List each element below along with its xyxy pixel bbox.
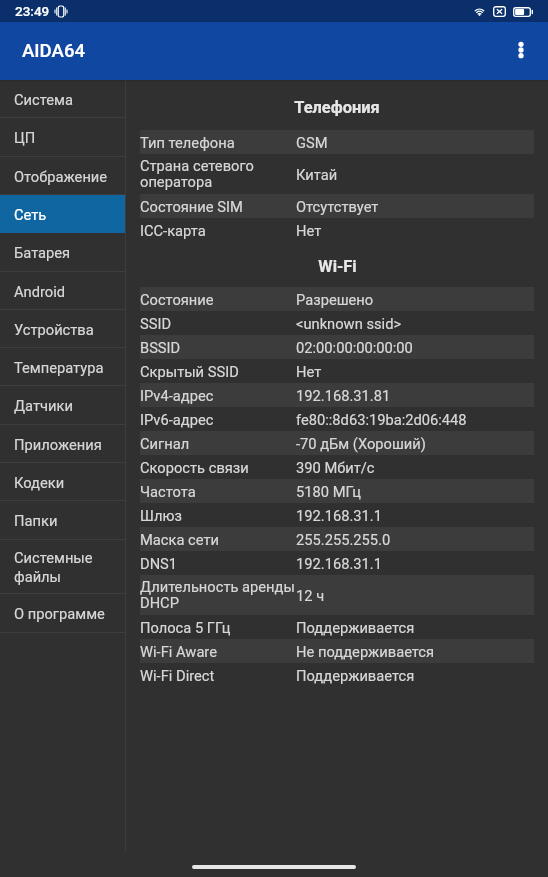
button[interactable]: Частота [140,479,534,503]
staticText: -70 дБм (Хороший) [296,435,426,452]
staticText: Скорость связи [140,459,296,476]
staticText: Длительность аренды DHCP [140,578,296,612]
staticText: DNS1 [140,555,296,572]
button[interactable]: Отображение [0,157,125,195]
button[interactable]: Система [0,80,125,118]
staticText: 02:00:00:00:00:00 [296,339,413,356]
staticText: ЦП [14,129,36,146]
staticText: Маска сети [140,531,296,548]
button[interactable]: SSID [140,311,534,335]
button[interactable]: Wi-Fi Aware [140,639,534,663]
staticText: <unknown ssid> [296,315,402,332]
staticText: Скрытый SSID [140,363,296,380]
staticText: Поддерживается [296,667,415,684]
staticText: Устройства [14,321,94,338]
button[interactable]: Приложения [0,425,125,463]
staticText: Батарея [14,244,71,261]
button[interactable]: Шлюз [140,503,534,527]
staticText: AIDA64 [22,40,86,62]
staticText: BSSID [140,339,296,356]
button[interactable]: ЦП [0,118,125,157]
button[interactable]: More options [493,22,548,80]
staticText: Отображение [14,168,108,185]
button[interactable]: Папки [0,501,125,540]
button[interactable]: ICC-карта [140,218,534,242]
button[interactable]: Маска сети [140,527,534,551]
staticText: Нет [296,363,322,380]
staticText: Нет [296,222,322,239]
button[interactable]: Скрытый SSID [140,359,534,383]
button[interactable]: Состояние SIM [140,194,534,218]
staticText: Кодеки [14,474,65,491]
staticText: Не поддерживается [296,643,435,660]
staticText: Страна сетевого оператора [140,157,296,191]
staticText: SSID [140,315,296,332]
staticText: 255.255.255.0 [296,531,391,548]
staticText: Шлюз [140,507,296,524]
staticText: IPv6-адрес [140,411,296,428]
staticText: Датчики [14,397,73,414]
button[interactable]: Состояние [140,287,534,311]
staticText: Разрешено [296,291,374,308]
button[interactable]: IPv6-адрес [140,407,534,431]
staticText: 12 ч [296,587,325,604]
staticText: Частота [140,483,296,500]
staticText: Поддерживается [296,619,415,636]
button[interactable]: Устройства [0,310,125,348]
button[interactable]: Датчики [0,386,125,425]
button[interactable]: Wi-Fi Direct [140,663,534,687]
staticText: Телефония [294,98,380,117]
button[interactable]: DNS1 [140,551,534,575]
button[interactable]: Сеть [0,195,125,233]
button[interactable]: Температура [0,348,125,386]
button[interactable]: Сигнал [140,431,534,455]
staticText: Полоса 5 ГГц [140,619,296,636]
button[interactable]: Длительность аренды DHCP [140,575,534,615]
staticText: Сигнал [140,435,296,452]
staticText: Система [14,91,73,108]
button[interactable]: Системные файлы [0,540,125,594]
button[interactable]: О программе [0,594,125,633]
staticText: Папки [14,512,58,529]
staticText: Android [14,283,66,300]
staticText: Приложения [14,436,102,453]
staticText: Китай [296,166,338,183]
staticText: IPv4-адрес [140,387,296,404]
staticText: 5180 МГц [296,483,361,500]
staticText: Wi-Fi [318,257,357,276]
button[interactable]: BSSID [140,335,534,359]
staticText: Сеть [14,206,47,223]
staticText: Состояние [140,291,296,308]
staticText: Системные файлы [14,549,117,586]
staticText: Состояние SIM [140,198,296,215]
staticText: Тип телефона [140,134,296,151]
staticText: fe80::8d63:19ba:2d06:448 [296,411,467,428]
staticText: О программе [14,605,105,622]
staticText: Wi-Fi Direct [140,667,296,684]
button[interactable]: IPv4-адрес [140,383,534,407]
button[interactable]: Скорость связи [140,455,534,479]
button[interactable]: Кодеки [0,463,125,501]
staticText: Отсутствует [296,198,379,215]
staticText: 23:49 [15,3,50,19]
staticText: 192.168.31.1 [296,507,382,524]
button[interactable]: Полоса 5 ГГц [140,615,534,639]
button[interactable]: Android [0,272,125,310]
staticText: 192.168.31.1 [296,555,382,572]
button[interactable]: Батарея [0,233,125,272]
button[interactable]: Тип телефона [140,130,534,154]
staticText: ICC-карта [140,222,296,239]
staticText: Wi-Fi Aware [140,643,296,660]
staticText: 390 Мбит/с [296,459,375,476]
staticText: Температура [14,359,104,376]
button[interactable]: Страна сетевого оператора [140,154,534,194]
staticText: 192.168.31.81 [296,387,391,404]
staticText: GSM [296,134,328,151]
